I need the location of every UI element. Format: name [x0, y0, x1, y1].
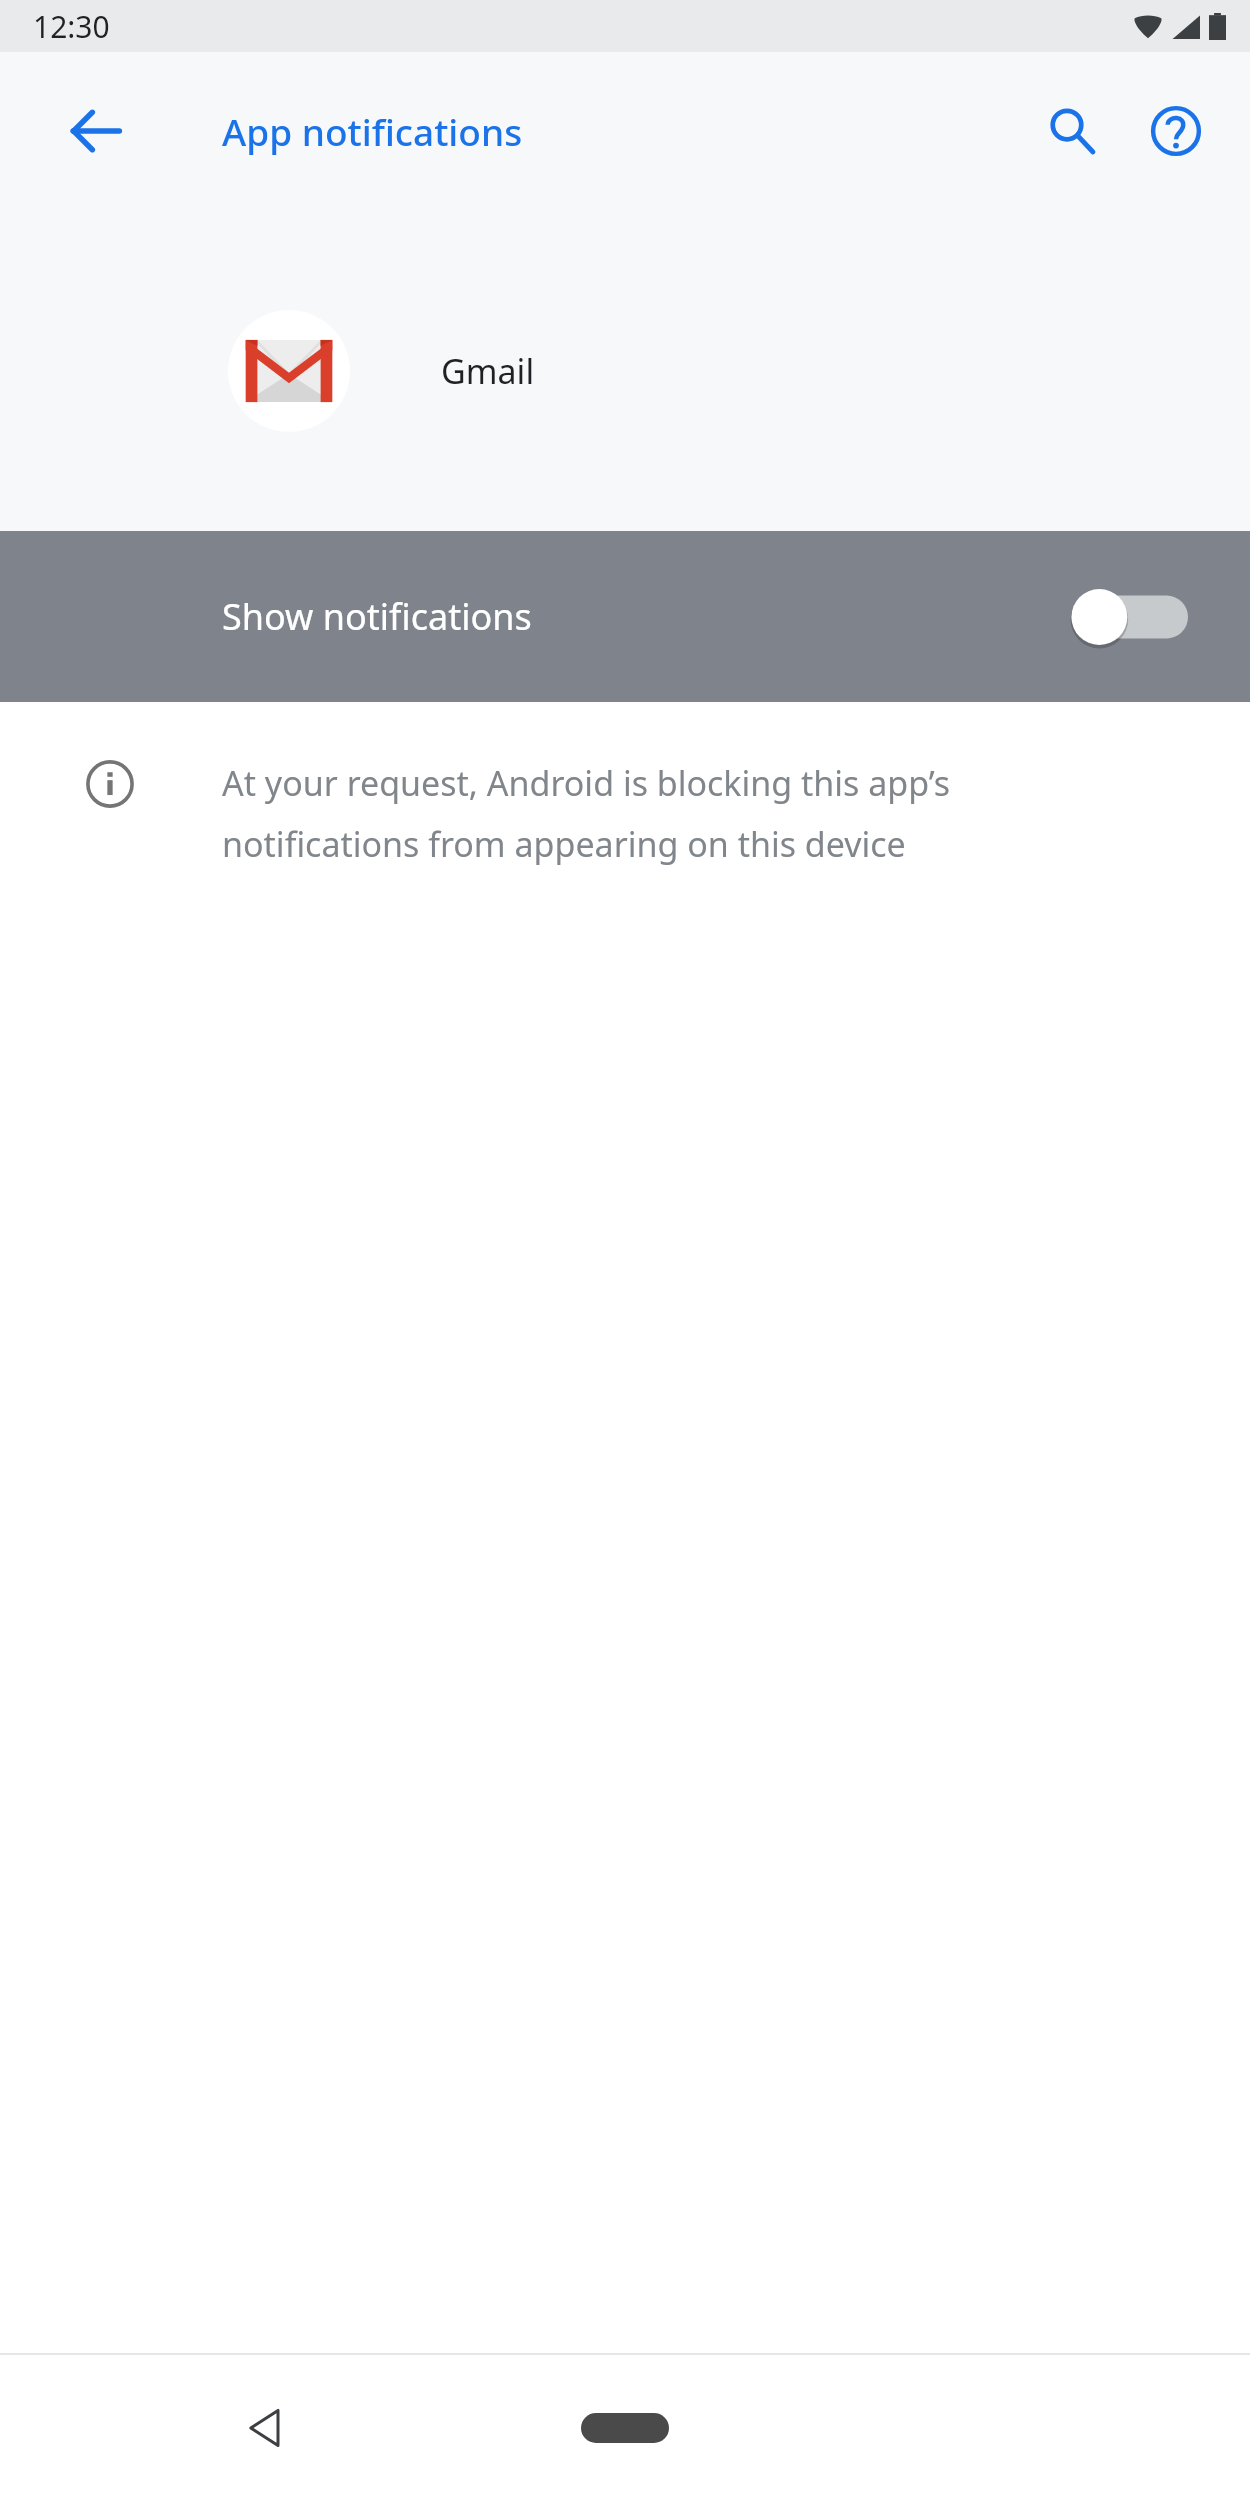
- staticText: At your request, Android is blocking thi…: [222, 760, 1102, 867]
- button[interactable]: Help: [1128, 83, 1224, 179]
- button[interactable]: Search: [1024, 83, 1120, 179]
- button[interactable]: Show notifications: [0, 531, 1250, 702]
- staticText: Show notifications: [222, 592, 532, 641]
- staticText: 12:30: [33, 6, 110, 47]
- button[interactable]: Navigate up: [48, 83, 144, 179]
- button[interactable]: Show notifications toggle, off: [1064, 574, 1188, 660]
- button[interactable]: Gmail: [0, 210, 1250, 531]
- button[interactable]: Home: [560, 2383, 690, 2473]
- staticText: App notifications: [222, 106, 523, 156]
- staticText: Gmail: [441, 348, 535, 394]
- button[interactable]: Back: [218, 2380, 314, 2476]
